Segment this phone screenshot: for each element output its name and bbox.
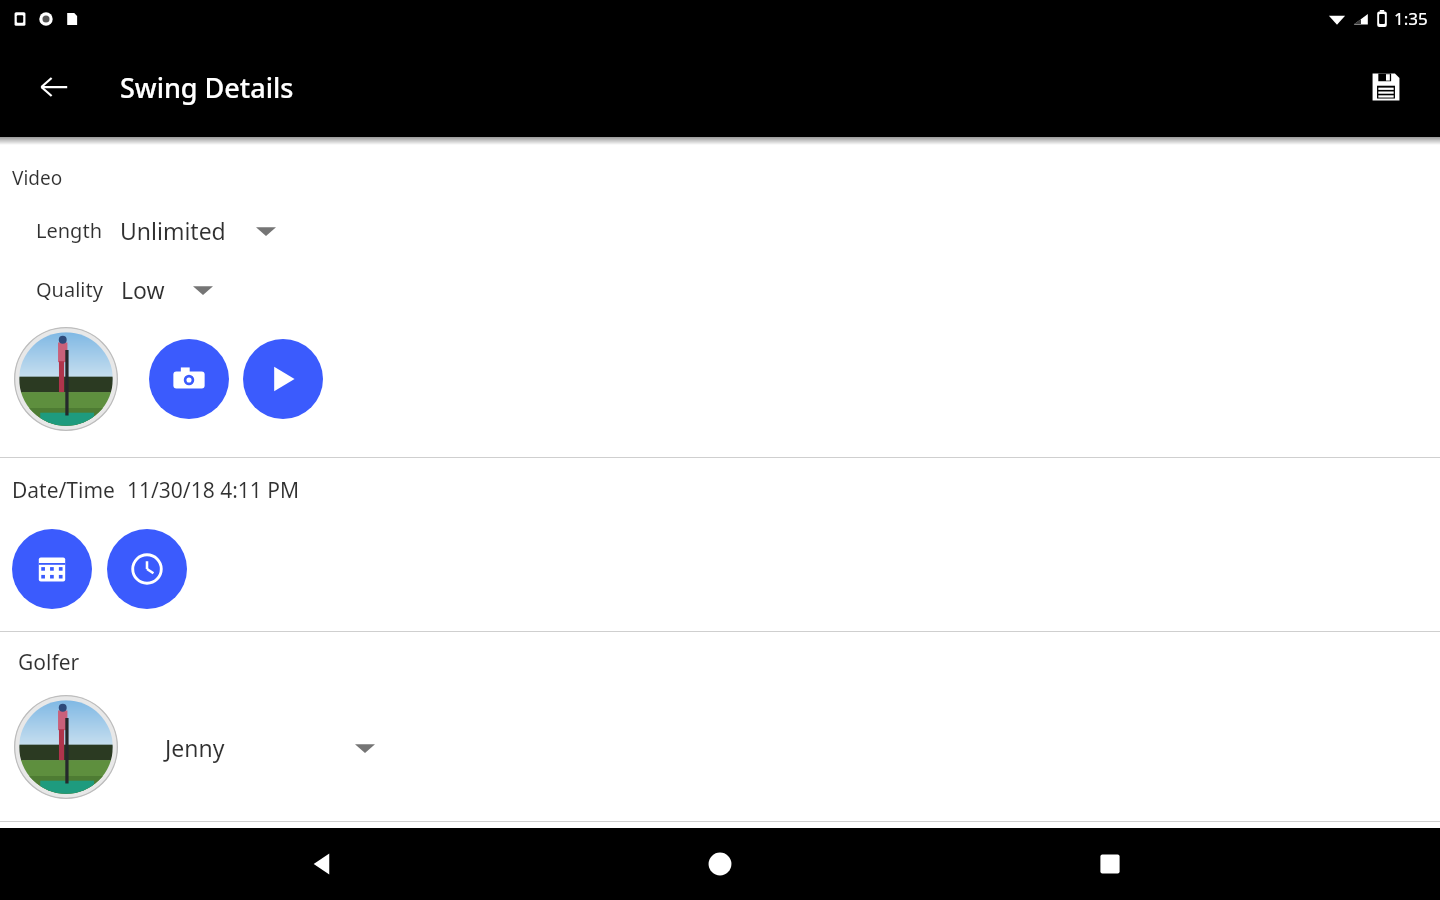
staticText: Swing Details [120,69,294,106]
button[interactable]: Record video [149,339,229,419]
staticText: Golfer [18,648,80,677]
staticText: Low [121,274,165,305]
staticText: Date/Time [12,476,115,505]
button[interactable] [14,695,118,799]
staticText: Length [36,217,102,244]
button[interactable]: Play video [243,339,323,419]
staticText: Video [12,165,63,191]
button[interactable]: Back [26,59,82,115]
button[interactable]: Back [0,828,480,900]
staticText: Unlimited [120,215,226,246]
button[interactable]: Low [121,274,213,305]
staticText: Jenny [165,732,225,763]
button[interactable]: Pick time [107,529,187,609]
button[interactable]: Save [1358,59,1414,115]
button[interactable] [14,327,118,431]
button[interactable]: Home [480,828,960,900]
button[interactable]: Jenny [165,732,375,763]
button[interactable]: Unlimited [120,215,276,246]
staticText: Quality [36,276,103,303]
staticText: 1:35 [1394,7,1428,30]
staticText: 11/30/18 4:11 PM [127,476,300,505]
button[interactable]: Pick date [12,529,92,609]
button[interactable]: Recent apps [960,828,1440,900]
